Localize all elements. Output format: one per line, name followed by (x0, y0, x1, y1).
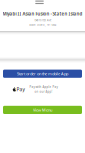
staticText: Start order on the mobile App (17, 71, 68, 76)
staticText: View Menu (33, 107, 52, 113)
staticText: Miyabi II Asian Fusion - Staten Island (2, 11, 82, 17)
button[interactable]: Menu (35, 0, 50, 4)
staticText: on our App! (35, 90, 53, 94)
button[interactable]: Start order on the mobile App (3, 70, 82, 78)
staticText: Pay (17, 86, 25, 92)
staticText: Pay with Apple Pay (30, 85, 58, 89)
button[interactable]: View Menu (3, 106, 82, 114)
staticText: 1548 Forest Ave (34, 18, 51, 22)
staticText: Staten Island, NY 10302 (29, 23, 56, 27)
